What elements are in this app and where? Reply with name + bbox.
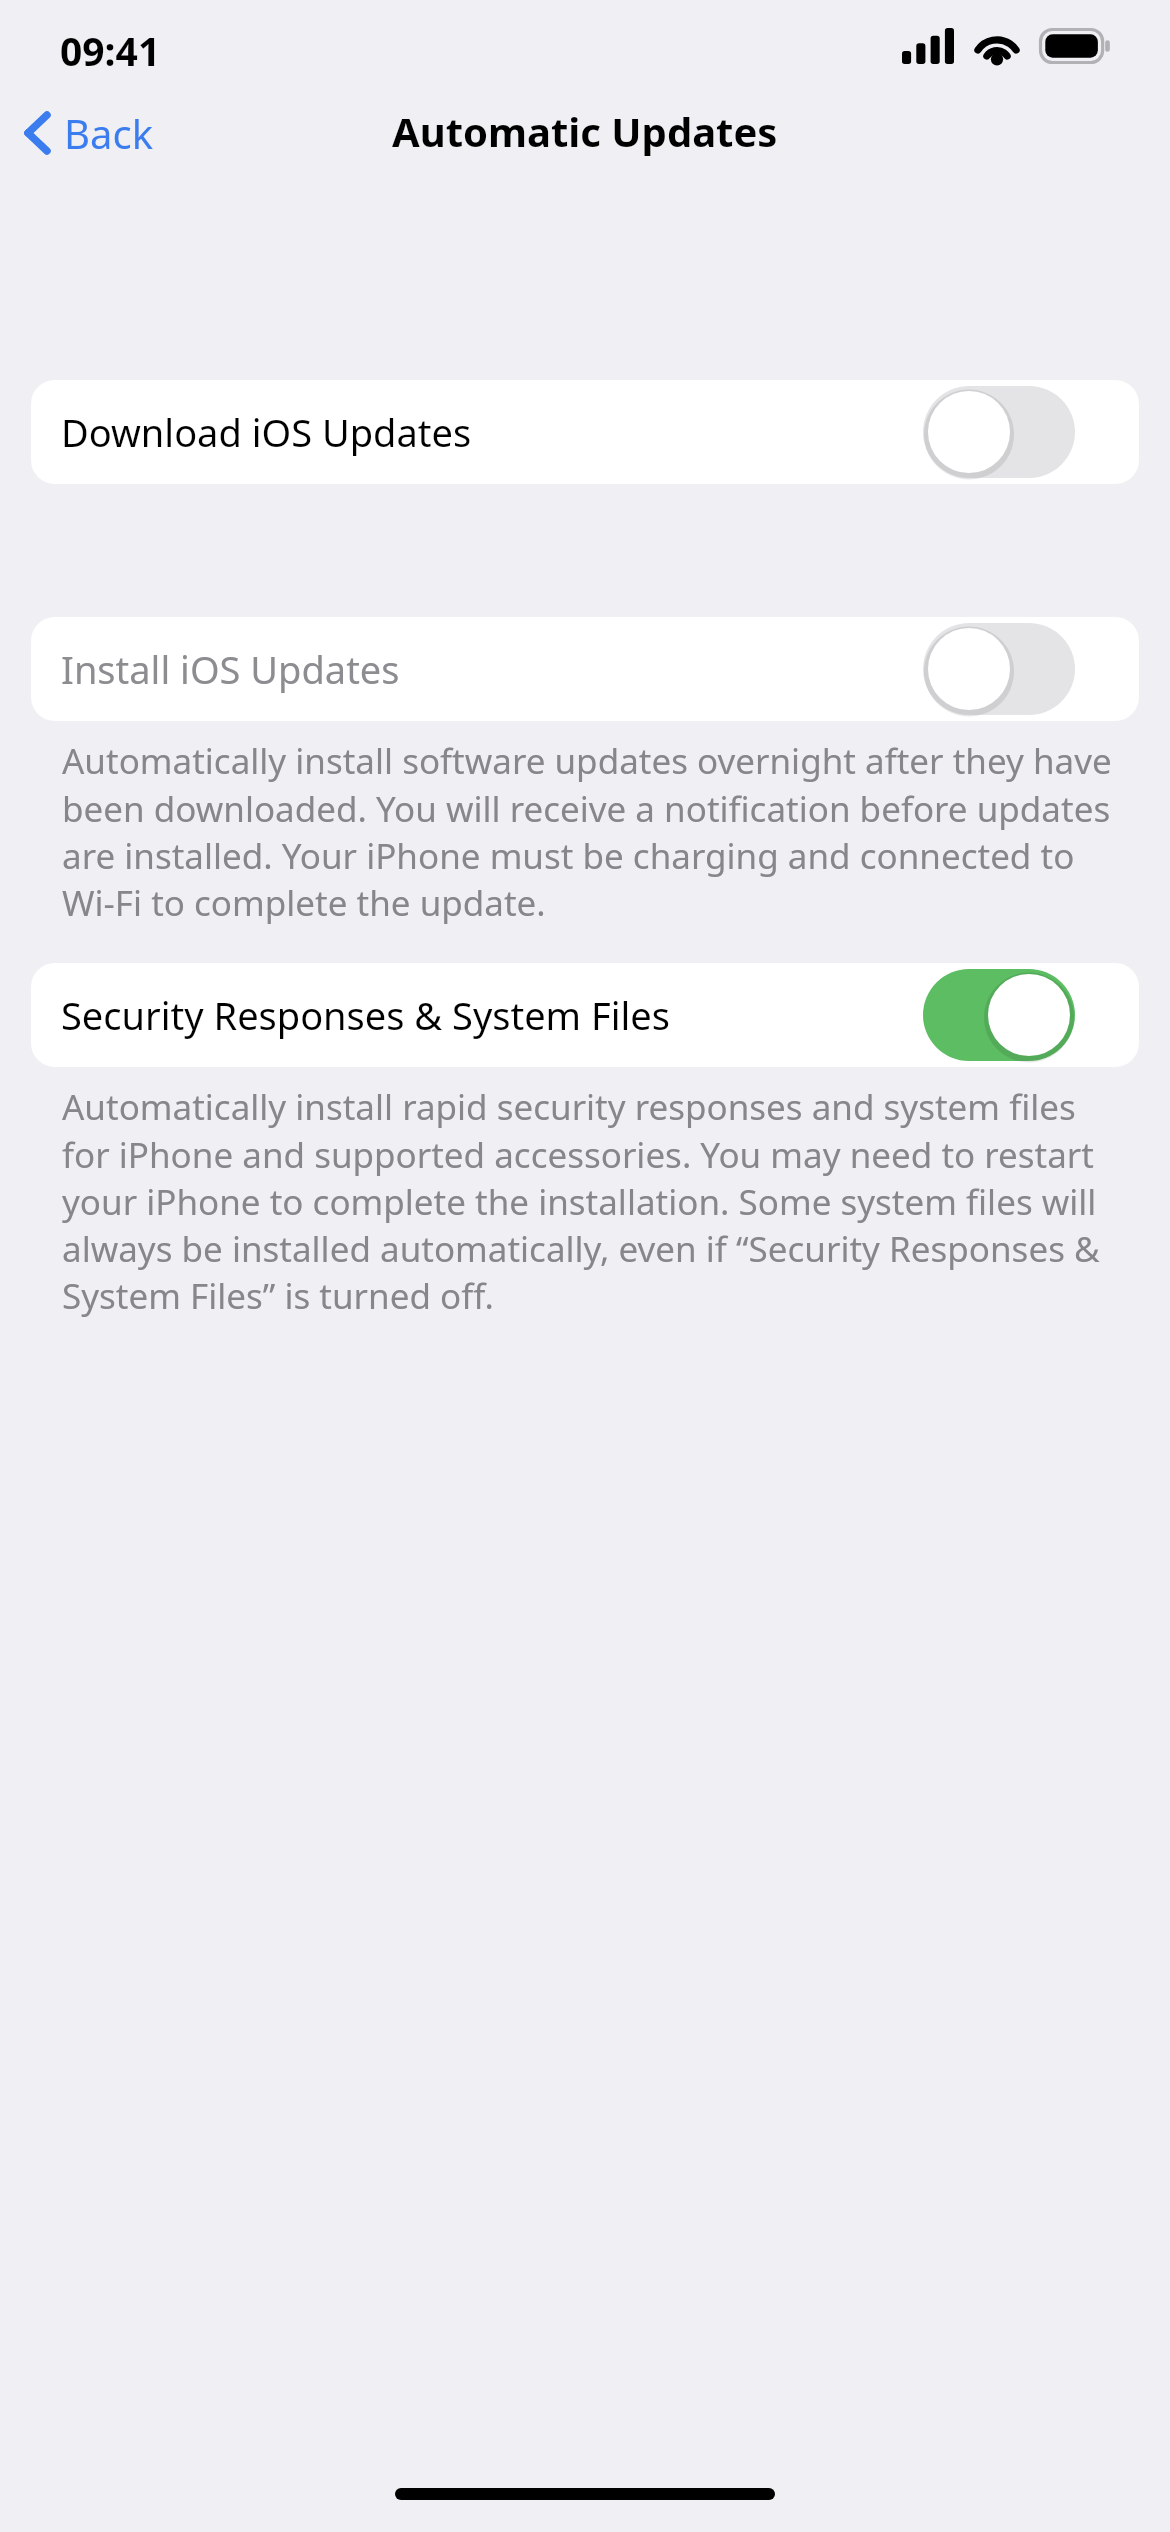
button[interactable]: Install iOS Updates xyxy=(31,617,1139,721)
staticText: 09:41 xyxy=(60,24,161,77)
staticText: Security Responses & System Files xyxy=(61,989,670,1041)
other: Back xyxy=(24,112,50,154)
button[interactable]: Off xyxy=(923,386,1075,478)
staticText: Automatically install rapid security res… xyxy=(62,1083,1128,1319)
staticText: Automatic Updates xyxy=(392,104,778,158)
button[interactable]: Back xyxy=(14,98,163,168)
button[interactable]: Off xyxy=(923,623,1075,715)
staticText: Install iOS Updates xyxy=(61,643,400,695)
button[interactable]: On xyxy=(923,969,1075,1061)
button[interactable]: Security Responses & System Files xyxy=(31,963,1139,1067)
staticText: Download iOS Updates xyxy=(61,406,472,458)
button[interactable]: Download iOS Updates xyxy=(31,380,1139,484)
staticText: Back xyxy=(64,106,153,160)
staticText: Automatically install software updates o… xyxy=(62,737,1128,926)
